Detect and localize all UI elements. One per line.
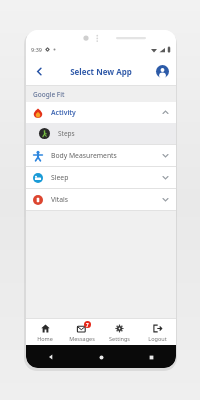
staticText: Vitals [51,195,69,204]
staticText: Steps [58,129,75,138]
staticText: Logout [148,335,167,342]
button[interactable]: Recents [126,355,176,360]
staticText: Home [37,335,53,342]
staticText: 7 [86,322,89,328]
staticText: Sleep [51,173,69,182]
button[interactable]: Vitals [26,189,176,210]
button[interactable]: Home [76,355,126,360]
staticText: Activity [51,108,76,117]
button[interactable]: Sleep [26,167,176,188]
button[interactable]: Home [26,319,63,345]
staticText: Google Fit [33,90,65,99]
staticText: Settings [109,335,130,342]
staticText: Messages [69,335,95,342]
button[interactable]: Body Measurements [26,145,176,166]
button[interactable]: Activity [26,102,176,123]
button[interactable]: Back [26,354,76,360]
button[interactable]: 7 [63,319,100,345]
button[interactable]: Profile [154,63,170,79]
staticText: Body Measurements [51,151,117,160]
button[interactable]: Back [30,62,48,80]
staticText: Select New App [70,66,132,77]
staticText: 9:39 [31,46,42,53]
button[interactable]: Settings [100,319,138,345]
button[interactable]: Logout [138,319,176,345]
button[interactable]: Steps [26,123,176,144]
